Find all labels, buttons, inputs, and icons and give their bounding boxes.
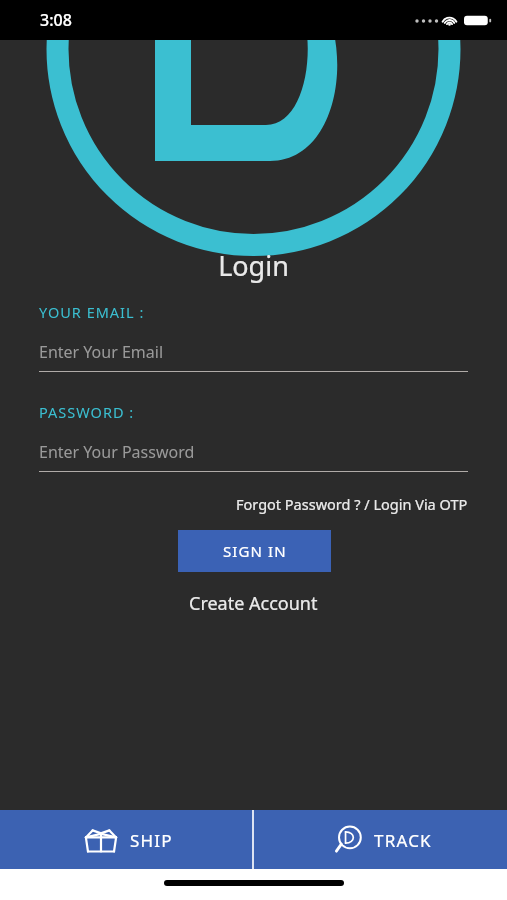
- button[interactable]: Enter Your Email: [39, 341, 468, 372]
- button[interactable]: Enter Your Password: [39, 441, 468, 472]
- staticText: PASSWORD :: [39, 402, 135, 422]
- staticText: Login: [0, 247, 507, 284]
- staticText: Forgot Password ? / Login Via OTP: [236, 494, 468, 514]
- staticText: TRACK: [374, 829, 432, 852]
- staticText: Create Account: [189, 591, 318, 616]
- staticText: Enter Your Email: [39, 341, 164, 363]
- button[interactable]: TRACK: [254, 810, 507, 869]
- button[interactable]: SHIP: [0, 810, 252, 869]
- staticText: 3:08: [40, 9, 72, 31]
- button[interactable]: Forgot Password ? / Login Via OTP: [236, 492, 507, 516]
- staticText: YOUR EMAIL :: [39, 302, 145, 322]
- button[interactable]: SIGN IN: [178, 530, 331, 572]
- staticText: SHIP: [130, 829, 173, 852]
- button[interactable]: Create Account: [181, 588, 326, 619]
- staticText: SIGN IN: [223, 541, 287, 561]
- staticText: Enter Your Password: [39, 441, 195, 463]
